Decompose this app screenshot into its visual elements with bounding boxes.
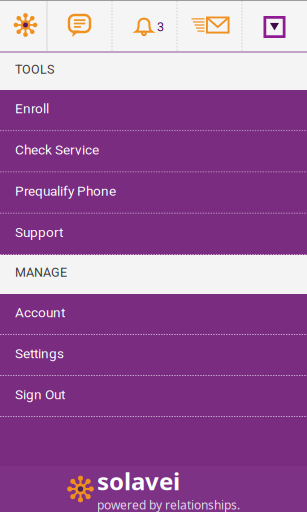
button[interactable]: Settings bbox=[0, 335, 307, 376]
staticText: Enroll bbox=[15, 101, 49, 117]
button[interactable]: Mail bbox=[177, 1, 241, 51]
button[interactable]: Notifications, 3 unread bbox=[112, 1, 176, 51]
button[interactable]: Check Service bbox=[0, 131, 307, 172]
staticText: MANAGE bbox=[15, 265, 67, 280]
staticText: 3 bbox=[157, 20, 164, 34]
staticText: solavei bbox=[97, 465, 180, 497]
button[interactable]: Home bbox=[0, 1, 46, 51]
button[interactable]: Messages bbox=[47, 1, 111, 51]
staticText: Support bbox=[15, 224, 63, 240]
staticText: Settings bbox=[15, 345, 64, 361]
staticText: Check Service bbox=[15, 142, 99, 158]
button[interactable]: Sign Out bbox=[0, 376, 307, 417]
staticText: TOOLS bbox=[15, 62, 54, 77]
staticText: Prequalify Phone bbox=[15, 183, 116, 199]
staticText: Sign Out bbox=[15, 386, 65, 402]
button[interactable]: Prequalify Phone bbox=[0, 172, 307, 214]
button[interactable]: Account bbox=[0, 294, 307, 335]
button[interactable]: Menu bbox=[242, 1, 306, 51]
staticText: powered by relationships. bbox=[97, 497, 240, 512]
button[interactable]: Support bbox=[0, 214, 307, 255]
button[interactable]: Enroll bbox=[0, 90, 307, 131]
staticText: Account bbox=[15, 304, 65, 320]
